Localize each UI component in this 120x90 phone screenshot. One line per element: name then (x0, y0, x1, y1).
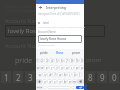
staticText: Interpret Time of Call 04/05/2021 (38, 12, 80, 16)
staticText: Confirmed Appointment (5, 8, 51, 13)
staticText: x (49, 80, 51, 84)
button[interactable]: o (74, 65, 79, 70)
button[interactable]: Enter (76, 86, 84, 89)
button[interactable]: s (42, 72, 47, 77)
button[interactable]: q (36, 65, 40, 70)
button[interactable]: Shift (36, 79, 42, 84)
button[interactable]: k (72, 72, 77, 77)
button[interactable]: v (57, 79, 62, 84)
staticText: Interpreting (46, 5, 66, 10)
staticText: 0 (81, 59, 83, 63)
button[interactable]: f (52, 72, 57, 77)
staticText: 3 (28, 72, 33, 83)
button[interactable]: . (71, 86, 76, 89)
button[interactable]: pride (36, 49, 52, 57)
button[interactable]: , (43, 86, 47, 89)
button[interactable]: 1 (36, 58, 40, 63)
staticText: 4 (40, 72, 45, 83)
button[interactable]: z (42, 79, 47, 84)
button[interactable]: h (62, 72, 67, 77)
staticText: 2 (16, 72, 21, 83)
button[interactable]: l (77, 72, 82, 77)
staticText: Rose (56, 51, 64, 55)
staticText: Account Name (5, 17, 43, 24)
button[interactable]: prom (68, 49, 84, 57)
button[interactable]: y (59, 65, 64, 70)
button[interactable]: 9 (74, 58, 79, 63)
button[interactable]: 8 (69, 58, 74, 63)
staticText: Account Name (38, 30, 56, 34)
staticText: , (45, 86, 46, 89)
button[interactable]: 4 (49, 58, 54, 63)
button[interactable]: 6 (59, 58, 64, 63)
staticText: . (73, 86, 74, 89)
staticText: e (46, 66, 48, 70)
staticText: 9 (100, 72, 105, 83)
staticText: b (64, 80, 66, 84)
button[interactable]: w (40, 65, 44, 70)
staticText: pride (15, 56, 33, 66)
button[interactable]: 2 (40, 58, 44, 63)
staticText: f (54, 73, 56, 77)
staticText: k (74, 73, 76, 77)
staticText: 7 (66, 59, 68, 63)
staticText: s (44, 73, 46, 77)
staticText: c (54, 80, 56, 84)
button[interactable]: n (67, 79, 72, 84)
staticText: l (79, 73, 80, 77)
staticText: z (44, 80, 46, 84)
staticText: 8 (71, 59, 73, 63)
staticText: lovely Rose House (40, 37, 67, 41)
staticText: m (73, 80, 76, 84)
staticText: Interpret Time of Call (5, 4, 45, 9)
staticText: 3 (46, 59, 48, 63)
button[interactable]: Space (47, 86, 71, 89)
button[interactable]: 5 (54, 58, 59, 63)
staticText: h (64, 73, 66, 77)
button[interactable]: r (49, 65, 54, 70)
button[interactable]: x (47, 79, 52, 84)
button[interactable]: lovely Rose House (38, 35, 82, 43)
staticText: lovely Rose House (8, 27, 59, 35)
staticText: n (69, 80, 71, 84)
staticText: t (56, 66, 58, 70)
button[interactable]: a (38, 72, 42, 77)
button[interactable]: j (67, 72, 72, 77)
button[interactable]: i (69, 65, 74, 70)
staticText: Account Number (5, 42, 49, 49)
staticText: r (51, 66, 53, 70)
button[interactable]: Rose (52, 49, 68, 57)
staticText: prom (86, 56, 102, 64)
button[interactable]: m (72, 79, 77, 84)
staticText: 5 (52, 72, 57, 83)
button[interactable]: e (44, 65, 49, 70)
staticText: v (59, 80, 61, 84)
button[interactable]: c (52, 79, 57, 84)
staticText: u (66, 66, 68, 70)
button[interactable]: d (47, 72, 52, 77)
button[interactable]: p (79, 65, 84, 70)
staticText: 4 (51, 59, 53, 63)
staticText: 1 (37, 59, 39, 63)
button[interactable]: 0 (79, 58, 84, 63)
staticText: p (81, 66, 83, 70)
staticText: Account Number (38, 44, 55, 47)
staticText: pride (40, 51, 48, 55)
button[interactable]: t (54, 65, 59, 70)
button[interactable]: ?123 (36, 86, 43, 89)
staticText: j (69, 73, 70, 77)
button[interactable]: Backspace (77, 79, 84, 84)
staticText: 6 (64, 72, 69, 83)
button[interactable]: label (38, 20, 50, 26)
staticText: 8 (88, 72, 93, 83)
staticText: 1 (4, 72, 9, 83)
button[interactable]: Back (38, 5, 42, 9)
staticText: g (59, 73, 61, 77)
button[interactable]: 7 (64, 58, 69, 63)
button[interactable]: 3 (44, 58, 49, 63)
button[interactable]: b (62, 79, 67, 84)
staticText: label (43, 21, 50, 25)
staticText: 6 (61, 59, 63, 63)
button[interactable]: u (64, 65, 69, 70)
button[interactable]: g (57, 72, 62, 77)
